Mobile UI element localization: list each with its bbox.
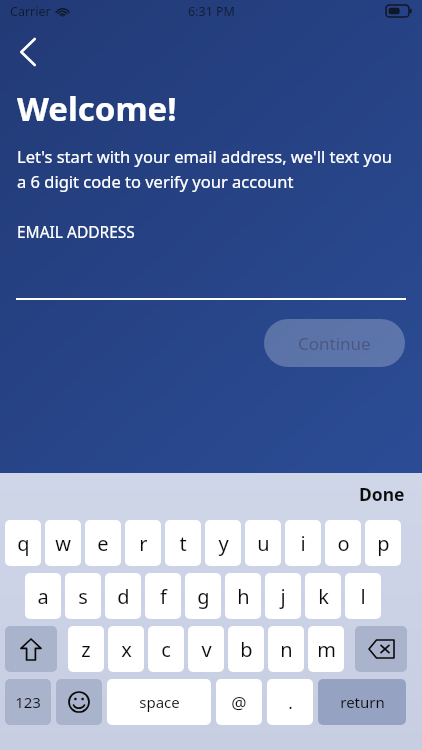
staticText: @ <box>231 691 247 714</box>
staticText: h <box>237 583 250 610</box>
button[interactable]: f <box>145 573 181 619</box>
staticText: EMAIL ADDRESS <box>17 221 135 242</box>
staticText: c <box>161 636 171 663</box>
button[interactable]: s <box>65 573 101 619</box>
staticText: f <box>160 583 167 610</box>
button[interactable]: Done <box>359 482 405 506</box>
button[interactable]: space <box>107 679 211 725</box>
button[interactable]: 123 <box>5 679 51 725</box>
button[interactable]: r <box>125 520 161 566</box>
staticText: x <box>121 636 132 663</box>
button[interactable]: x <box>108 626 144 672</box>
button[interactable]: l <box>345 573 381 619</box>
staticText: Welcome! <box>17 86 177 131</box>
button[interactable]: m <box>308 626 344 672</box>
button[interactable]: h <box>225 573 261 619</box>
staticText: space <box>139 692 180 712</box>
button[interactable]: . <box>267 679 313 725</box>
button[interactable]: v <box>188 626 224 672</box>
staticText: l <box>360 583 366 610</box>
staticText: p <box>377 530 390 557</box>
staticText: n <box>280 636 293 663</box>
staticText: b <box>240 636 253 663</box>
button[interactable]: q <box>5 520 41 566</box>
staticText: . <box>288 691 293 714</box>
button[interactable]: p <box>365 520 401 566</box>
button[interactable]: y <box>205 520 241 566</box>
button[interactable] <box>16 280 406 300</box>
staticText: a <box>37 583 49 610</box>
staticText: m <box>317 636 336 663</box>
staticText: return <box>340 692 385 712</box>
button[interactable]: a <box>25 573 61 619</box>
staticText: o <box>337 530 350 557</box>
staticText: d <box>117 583 130 610</box>
button[interactable]: return <box>318 679 406 725</box>
staticText: w <box>55 530 71 557</box>
staticText: j <box>280 583 286 610</box>
staticText: i <box>300 530 306 557</box>
button[interactable]: j <box>265 573 301 619</box>
button[interactable]: b <box>228 626 264 672</box>
staticText: Continue <box>298 332 371 355</box>
button[interactable]: k <box>305 573 341 619</box>
button[interactable]: Emoji <box>56 679 102 725</box>
staticText: u <box>257 530 270 557</box>
button[interactable]: o <box>325 520 361 566</box>
button[interactable]: d <box>105 573 141 619</box>
staticText: 6:31 PM <box>188 3 235 20</box>
staticText: e <box>97 530 109 557</box>
staticText: r <box>139 530 148 557</box>
staticText: Let's start with your email address, we'… <box>17 145 392 193</box>
staticText: t <box>179 530 187 557</box>
button[interactable]: e <box>85 520 121 566</box>
staticText: y <box>218 530 229 557</box>
staticText: k <box>318 583 329 610</box>
button[interactable]: z <box>68 626 104 672</box>
button[interactable]: Continue <box>264 319 405 367</box>
button[interactable]: g <box>185 573 221 619</box>
button[interactable]: Backspace <box>355 626 407 672</box>
staticText: s <box>78 583 88 610</box>
staticText: Done <box>359 482 405 506</box>
staticText: Carrier <box>10 3 51 20</box>
staticText: z <box>81 636 91 663</box>
staticText: g <box>197 583 210 610</box>
button[interactable]: t <box>165 520 201 566</box>
staticText: v <box>201 636 212 663</box>
button[interactable]: Back <box>6 30 50 74</box>
button[interactable]: Shift <box>5 626 57 672</box>
button[interactable]: i <box>285 520 321 566</box>
staticText: 123 <box>15 692 41 712</box>
button[interactable]: n <box>268 626 304 672</box>
button[interactable]: @ <box>216 679 262 725</box>
staticText: q <box>17 530 30 557</box>
button[interactable]: w <box>45 520 81 566</box>
button[interactable]: u <box>245 520 281 566</box>
button[interactable]: c <box>148 626 184 672</box>
